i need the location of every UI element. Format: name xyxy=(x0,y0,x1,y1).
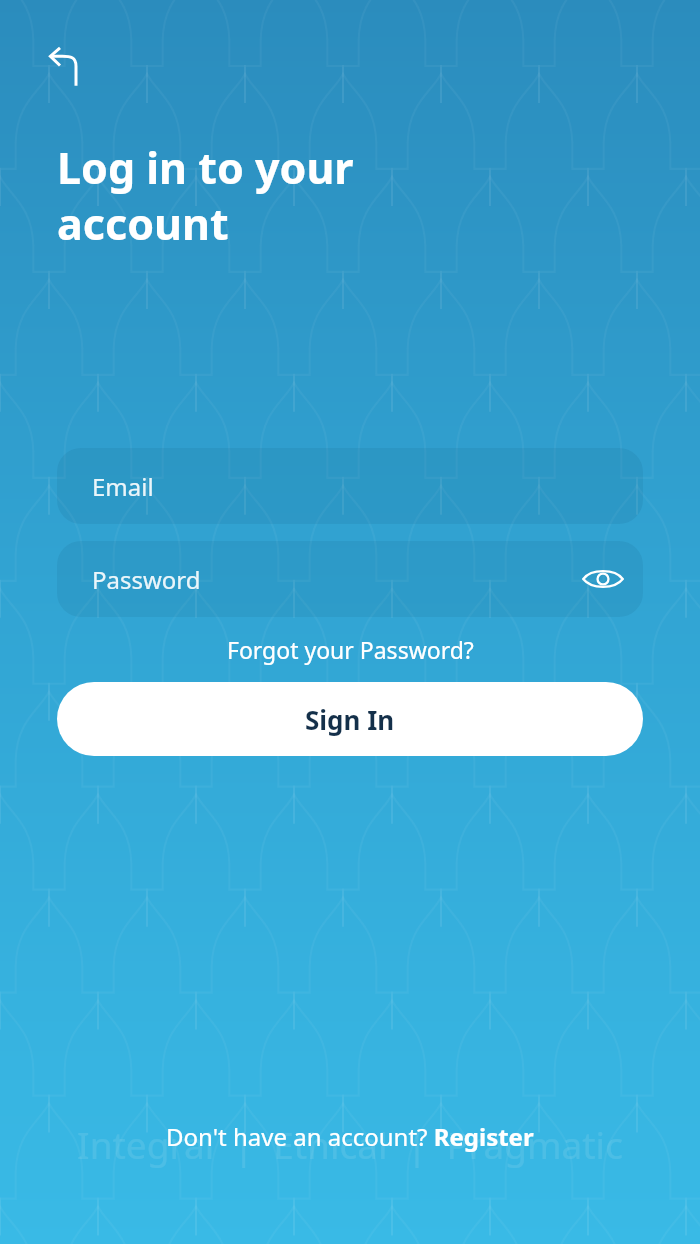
button[interactable]: Password xyxy=(57,541,643,617)
staticText: Password xyxy=(92,563,201,596)
staticText: Forgot your Password? xyxy=(227,634,474,665)
staticText: Don't have an account? Register xyxy=(166,1120,534,1153)
button[interactable]: Show password xyxy=(577,553,629,605)
staticText: Log in to your account xyxy=(57,138,354,253)
button[interactable]: Don't have an account? Register xyxy=(156,1114,544,1159)
button[interactable]: Back xyxy=(40,40,96,96)
button[interactable]: Forgot your Password? xyxy=(219,630,482,669)
button[interactable]: Sign In xyxy=(57,682,643,756)
staticText: Sign In xyxy=(305,702,395,737)
staticText: Email xyxy=(92,470,154,503)
staticText: Integral | Ethical | Pragmatic xyxy=(0,1119,700,1169)
button[interactable]: Email xyxy=(57,448,643,524)
